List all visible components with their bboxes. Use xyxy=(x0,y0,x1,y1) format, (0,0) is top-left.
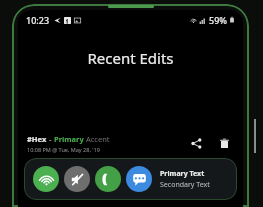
staticText: Primary Text xyxy=(160,169,205,179)
staticText: #Hex xyxy=(27,134,47,144)
button[interactable]: Primary Text xyxy=(24,158,237,200)
staticText: 59% xyxy=(209,14,227,26)
staticText: Accent xyxy=(84,134,110,144)
staticText: 10:23 xyxy=(26,14,50,26)
staticText: Recent Edits xyxy=(87,48,174,68)
button[interactable] xyxy=(33,166,59,192)
button[interactable]: Share xyxy=(186,133,206,153)
staticText: 10:08 PM @ Tue, May 28, '19 xyxy=(27,146,100,153)
staticText: Primary xyxy=(54,134,84,144)
button[interactable]: Delete xyxy=(214,133,234,153)
staticText: - xyxy=(47,134,54,144)
button[interactable] xyxy=(95,166,121,192)
button[interactable] xyxy=(64,166,90,192)
staticText: Secondary Text xyxy=(160,180,210,190)
button[interactable] xyxy=(126,166,152,192)
